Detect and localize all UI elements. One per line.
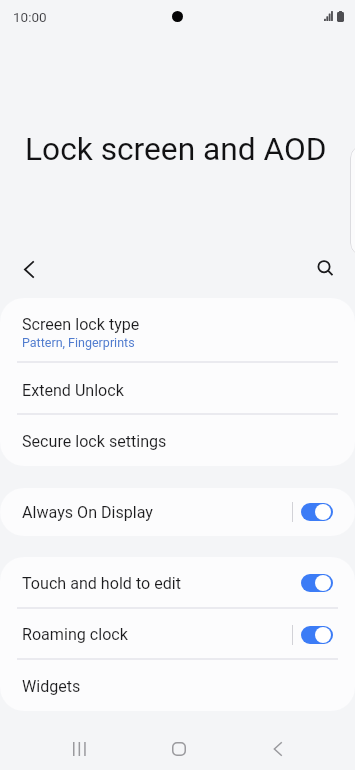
button[interactable]: Always On Display bbox=[301, 503, 333, 521]
button[interactable]: Extend Unlock bbox=[0, 363, 355, 415]
button[interactable]: Home bbox=[157, 727, 201, 770]
staticText: 10:00 bbox=[13, 9, 47, 25]
button[interactable]: Navigate up bbox=[7, 247, 51, 291]
button[interactable]: Back bbox=[256, 727, 300, 770]
button[interactable]: Search bbox=[304, 247, 348, 291]
button[interactable]: Roaming clock bbox=[0, 609, 355, 660]
staticText: Lock screen and AOD bbox=[25, 131, 327, 168]
staticText: Touch and hold to edit bbox=[22, 574, 181, 593]
staticText: Extend Unlock bbox=[22, 381, 124, 400]
staticText: Pattern, Fingerprints bbox=[22, 335, 135, 350]
button[interactable]: Secure lock settings bbox=[0, 415, 355, 466]
button[interactable]: Always On Display bbox=[0, 488, 355, 536]
staticText: Secure lock settings bbox=[22, 432, 167, 451]
button[interactable]: Recent apps bbox=[58, 727, 102, 770]
button[interactable]: Touch and hold to edit bbox=[301, 574, 333, 592]
button[interactable]: Widgets bbox=[0, 660, 355, 711]
button[interactable]: Roaming clock bbox=[301, 626, 333, 644]
staticText: Always On Display bbox=[22, 503, 153, 522]
button[interactable]: Screen lock type bbox=[0, 298, 355, 363]
staticText: Roaming clock bbox=[22, 625, 128, 644]
button[interactable]: Touch and hold to edit bbox=[0, 557, 355, 609]
staticText: Widgets bbox=[22, 677, 81, 696]
staticText: Screen lock type bbox=[22, 315, 140, 334]
